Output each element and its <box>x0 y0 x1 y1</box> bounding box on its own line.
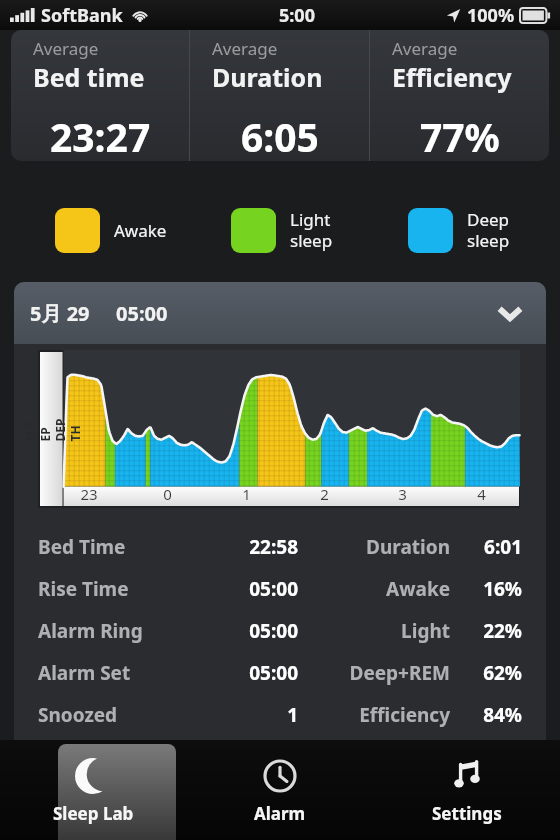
staticText: 62% <box>462 660 522 686</box>
staticText: Duration <box>212 60 323 94</box>
staticText: Alarm Ring <box>38 618 190 644</box>
staticText: 0 <box>163 484 172 504</box>
staticText: 05:00 <box>190 618 298 644</box>
staticText: Awake <box>114 219 167 242</box>
staticText: Awake <box>298 576 450 602</box>
staticText: 05:00 <box>116 300 168 327</box>
button[interactable]: Alarm Set <box>38 652 522 694</box>
button[interactable]: Average <box>11 30 189 161</box>
staticText: 1 <box>190 702 298 728</box>
button[interactable]: Rise Time <box>38 568 522 610</box>
staticText: 23 <box>80 484 98 504</box>
button[interactable]: Snoozed <box>38 694 522 736</box>
staticText: Snoozed <box>38 702 190 728</box>
staticText: 5:00 <box>279 3 315 28</box>
staticText: 6:01 <box>462 534 522 560</box>
staticText: SLEEP DEPTH <box>21 417 82 441</box>
staticText: Efficiency <box>392 60 512 94</box>
button[interactable]: Average <box>370 30 549 161</box>
staticText: Alarm Set <box>38 660 190 686</box>
staticText: 05:00 <box>190 576 298 602</box>
button[interactable]: Average <box>190 30 369 161</box>
button[interactable]: 5月 29 <box>14 282 546 344</box>
staticText: Duration <box>298 534 450 560</box>
button[interactable]: Collapse details <box>488 291 532 335</box>
button[interactable]: Average <box>11 30 549 161</box>
staticText: 16% <box>462 576 522 602</box>
staticText: Bed Time <box>38 534 190 560</box>
staticText: Efficiency <box>298 702 450 728</box>
staticText: 6:05 <box>241 110 319 161</box>
staticText: 22% <box>462 618 522 644</box>
staticText: 5月 29 <box>30 300 90 327</box>
button[interactable]: Alarm tab <box>186 740 373 840</box>
staticText: Average <box>33 37 99 60</box>
staticText: Rise Time <box>38 576 190 602</box>
button[interactable]: Deep sleep <box>408 207 510 253</box>
button[interactable]: Awake <box>55 207 167 253</box>
staticText: Alarm <box>254 802 306 825</box>
button[interactable]: Sleep Lab tab <box>0 740 186 840</box>
staticText: Deep sleep <box>467 208 510 252</box>
staticText: 77% <box>420 110 500 161</box>
staticText: 3 <box>398 484 407 504</box>
staticText: 23:27 <box>50 110 151 161</box>
staticText: Sleep Lab <box>53 802 134 825</box>
staticText: Average <box>212 37 278 60</box>
staticText: Deep+REM <box>298 660 450 686</box>
staticText: SoftBank <box>41 3 123 28</box>
staticText: Bed time <box>33 60 145 94</box>
staticText: Settings <box>432 802 502 825</box>
staticText: Average <box>392 37 458 60</box>
button[interactable]: Settings tab <box>373 740 560 840</box>
button[interactable]: Light sleep <box>231 207 333 253</box>
button[interactable]: Alarm Ring <box>38 610 522 652</box>
staticText: 1 <box>242 484 251 504</box>
staticText: 22:58 <box>190 534 298 560</box>
staticText: 2 <box>320 484 329 504</box>
staticText: 4 <box>477 484 486 504</box>
staticText: 84% <box>462 702 522 728</box>
button[interactable]: SLEEP DEPTH <box>38 350 520 508</box>
staticText: Light <box>298 618 450 644</box>
staticText: 05:00 <box>190 660 298 686</box>
button[interactable]: Bed Time <box>38 526 522 568</box>
staticText: 100% <box>467 3 515 28</box>
staticText: Light sleep <box>290 208 333 252</box>
